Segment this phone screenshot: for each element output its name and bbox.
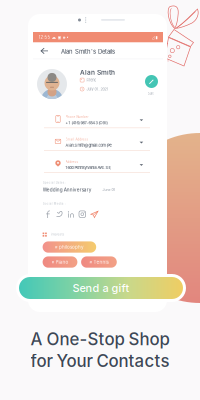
staticText: ▣	[57, 35, 61, 40]
staticText: Interests	[50, 232, 64, 236]
staticText: Email Address	[66, 138, 89, 141]
staticText: Alan Smith	[80, 68, 115, 76]
button[interactable]: Email Address	[33, 136, 163, 158]
staticText: ◿ ▮	[151, 35, 157, 40]
staticText: #	[55, 245, 58, 249]
staticText: June 09	[102, 188, 115, 192]
button[interactable]: #	[43, 241, 96, 253]
staticText: ▾	[66, 35, 68, 39]
staticText: Edit	[147, 91, 153, 95]
staticText: for Your Contacts	[30, 351, 169, 371]
staticText: Friend	[86, 78, 96, 82]
button[interactable]: Edit contact	[144, 74, 159, 89]
staticText: #	[89, 260, 92, 264]
staticText: Social Media :	[43, 202, 66, 205]
button[interactable]: Send a gift	[16, 274, 186, 302]
button[interactable]: Back	[37, 42, 51, 59]
staticText: Special Dates :	[43, 181, 66, 184]
staticText: Send a gift	[72, 281, 129, 295]
button[interactable]: Facebook	[45, 210, 52, 218]
button[interactable]: Phone Number	[33, 113, 163, 136]
staticText: Address	[66, 160, 79, 164]
staticText: ◈	[62, 35, 65, 40]
staticText: A One-Stop Shop	[30, 329, 169, 349]
staticText: Alan.Smith@gmail.com (Pe	[65, 143, 111, 148]
button[interactable]: Twitter	[56, 210, 63, 218]
staticText: philosophy	[59, 244, 84, 250]
staticText: #	[51, 260, 54, 264]
button[interactable]: #	[81, 256, 117, 268]
staticText: Piano	[55, 259, 68, 265]
button[interactable]: Send message	[90, 210, 99, 218]
staticText: ☁	[51, 35, 56, 40]
staticText: 1600 Pennsylvania Ave. SE,	[65, 165, 112, 170]
staticText: July 01, 2021	[86, 87, 108, 91]
staticText: Tennis	[93, 259, 108, 265]
staticText: 12:55	[38, 35, 50, 40]
button[interactable]: #	[43, 256, 77, 268]
button[interactable]: Instagram	[79, 210, 86, 218]
staticText: +1 (416) 987-6543 (Cell)	[65, 120, 107, 125]
staticText: Wedding Anniversary	[43, 187, 92, 192]
button[interactable]: LinkedIn	[67, 210, 74, 218]
staticText: Phone Number	[66, 115, 89, 119]
staticText: Alan Smith's Details	[61, 48, 115, 55]
button[interactable]: Address	[33, 158, 163, 181]
